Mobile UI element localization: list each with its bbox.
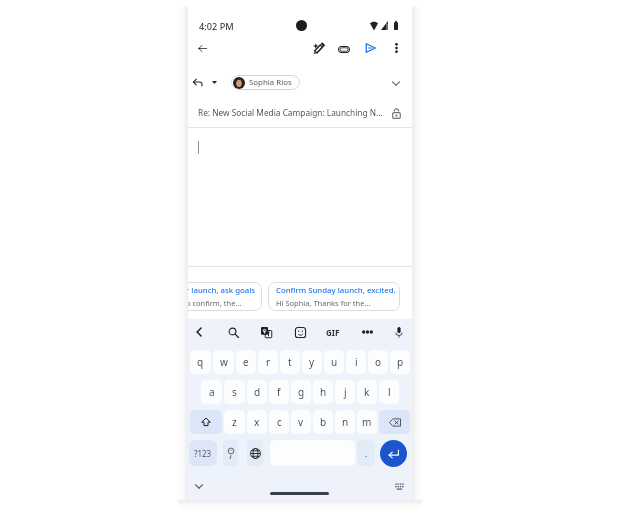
button[interactable]: Hide keyboard (190, 477, 208, 495)
staticText: Sophia Rios (249, 77, 292, 88)
button[interactable]: t (280, 350, 300, 374)
staticText: j (344, 385, 347, 399)
button[interactable]: e (236, 350, 256, 374)
button[interactable]: c (269, 410, 289, 434)
button[interactable]: x (247, 410, 267, 434)
staticText: m (362, 415, 372, 429)
button[interactable]: Voice input (387, 320, 411, 344)
staticText: b (320, 415, 327, 429)
button[interactable]: More options (385, 37, 407, 59)
button[interactable]: Previous (188, 320, 211, 344)
staticText: Hi Sophia, Thanks for the... (276, 298, 371, 308)
button[interactable]: a (201, 380, 222, 404)
button[interactable]: More (355, 320, 379, 344)
button[interactable]: r launch, ask goals (188, 282, 262, 311)
button[interactable]: Back (191, 37, 213, 59)
button[interactable]: Change language (247, 440, 263, 466)
staticText: q (197, 355, 204, 369)
staticText: w (220, 355, 228, 369)
button[interactable]: Sophia Rios (231, 75, 300, 90)
staticText: s (232, 385, 237, 399)
staticText: g (298, 385, 305, 399)
button[interactable]: Confirm Sunday launch, excited. (268, 282, 400, 311)
button[interactable]: v (291, 410, 311, 434)
staticText: l (388, 385, 391, 399)
staticText: c (277, 415, 282, 429)
button[interactable]: Backspace (379, 410, 410, 434)
button[interactable]: d (247, 380, 267, 404)
staticText: e (243, 355, 249, 369)
button[interactable]: Shift (190, 410, 222, 434)
button[interactable]: r (258, 350, 278, 374)
staticText: r (266, 355, 271, 369)
staticText: d (254, 385, 261, 399)
staticText: k (364, 385, 370, 399)
button[interactable]: m (357, 410, 377, 434)
button[interactable]: h (313, 380, 333, 404)
staticText: Re: New Social Media Campaign: Launching… (198, 107, 392, 118)
button[interactable]: z (224, 410, 245, 434)
staticText: a (209, 385, 215, 399)
staticText: Confirm Sunday launch, excited. (276, 285, 396, 296)
staticText: v (298, 415, 304, 429)
staticText: t (288, 355, 292, 369)
button[interactable]: q (190, 350, 211, 374)
button[interactable]: y (302, 350, 322, 374)
button[interactable]: Send (359, 37, 381, 59)
button[interactable]: j (335, 380, 355, 404)
staticText: z (232, 415, 237, 429)
staticText: h (320, 385, 327, 399)
staticText: ?123 (194, 448, 212, 459)
staticText: 4:02 PM (199, 20, 234, 33)
staticText: p (397, 355, 404, 369)
button[interactable]: Formatting options (307, 37, 329, 59)
staticText: y (309, 355, 315, 369)
button[interactable]: u (324, 350, 344, 374)
staticText: GIF (326, 327, 340, 338)
button[interactable]: . (357, 440, 375, 466)
button[interactable]: s (224, 380, 245, 404)
staticText: o confirm, the... (188, 298, 242, 308)
button[interactable]: Enter (380, 440, 407, 467)
staticText: r launch, ask goals (188, 285, 256, 296)
button[interactable]: Translate (254, 320, 278, 344)
staticText: i (355, 355, 358, 369)
button[interactable]: Reply options (207, 75, 221, 89)
button[interactable]: Keyboard settings (390, 477, 408, 495)
staticText: . (365, 447, 368, 459)
button[interactable]: w (213, 350, 234, 374)
button[interactable]: ?123 (189, 440, 217, 466)
button[interactable]: i (346, 350, 366, 374)
button[interactable]: Search (221, 320, 245, 344)
button[interactable]: Attach file (333, 38, 355, 60)
button[interactable]: Reply (188, 72, 208, 92)
button[interactable]: l (379, 380, 399, 404)
button[interactable]: GIF (321, 320, 345, 344)
button[interactable]: p (390, 350, 410, 374)
button[interactable]: k (357, 380, 377, 404)
staticText: o (375, 355, 382, 369)
button[interactable]: o (368, 350, 388, 374)
staticText: n (342, 415, 349, 429)
button[interactable]: f (269, 380, 289, 404)
button[interactable]: Stickers (288, 320, 312, 344)
button[interactable]: b (313, 410, 333, 434)
button[interactable]: Emoji (223, 440, 238, 466)
staticText: f (277, 385, 281, 399)
staticText: u (331, 355, 338, 369)
button[interactable]: g (291, 380, 311, 404)
button[interactable]: Show details (387, 74, 405, 92)
button[interactable]: n (335, 410, 355, 434)
staticText: x (254, 415, 260, 429)
